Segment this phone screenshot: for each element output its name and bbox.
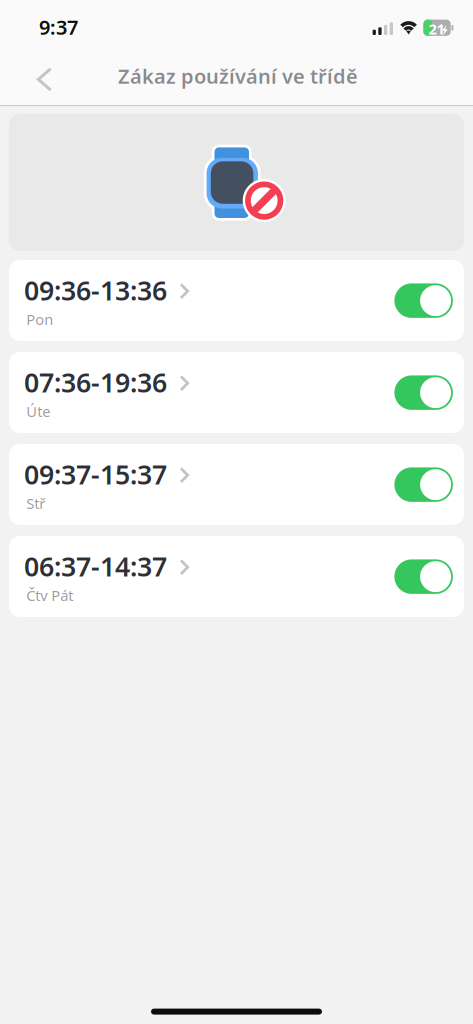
staticText: 06:37-14:37 xyxy=(24,548,167,584)
staticText: 09:37-15:37 xyxy=(24,456,167,492)
staticText: Pon xyxy=(26,310,53,329)
staticText: Stř xyxy=(26,494,45,513)
staticText: 09:36-13:36 xyxy=(24,272,167,308)
button[interactable]: 07:36-19:36 xyxy=(9,352,464,433)
staticText: Čtv Pát xyxy=(26,586,73,605)
staticText: Úte xyxy=(26,402,50,421)
staticText: 21 xyxy=(428,19,444,38)
staticText: 07:36-19:36 xyxy=(24,364,167,400)
button[interactable]: 09:37-15:37 xyxy=(9,444,464,525)
button[interactable]: 09:36-13:36 xyxy=(9,260,464,341)
staticText: 9:37 xyxy=(39,14,78,40)
button[interactable]: Back xyxy=(12,53,73,105)
staticText: Zákaz používání ve třídě xyxy=(118,63,358,89)
button[interactable]: 06:37-14:37 xyxy=(9,536,464,617)
